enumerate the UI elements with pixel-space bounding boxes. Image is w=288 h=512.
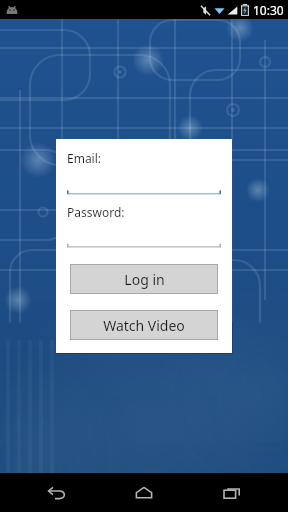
button[interactable]: Recent apps (201, 473, 263, 512)
staticText: Email: (67, 150, 102, 166)
staticText: Watch Video (103, 316, 185, 335)
button[interactable]: Watch Video (70, 310, 218, 340)
staticText: Log in (124, 270, 165, 289)
button[interactable] (67, 181, 221, 195)
button[interactable] (67, 234, 221, 248)
button[interactable]: Home (113, 473, 175, 512)
button[interactable]: Back (26, 473, 88, 512)
button[interactable]: Log in (70, 264, 218, 294)
staticText: Password: (67, 204, 125, 220)
staticText: 10:30 (253, 2, 284, 18)
